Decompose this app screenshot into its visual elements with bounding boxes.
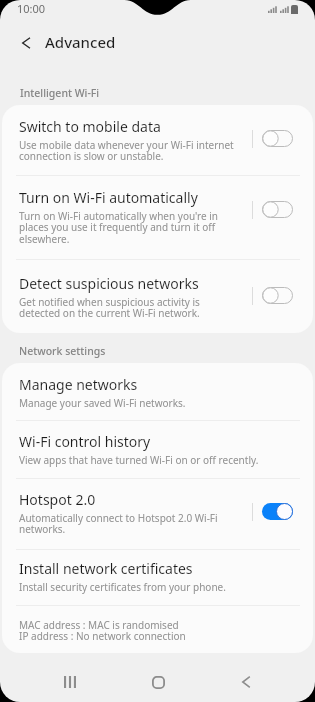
staticText: Detect suspicious networks bbox=[19, 274, 199, 293]
button[interactable]: Home bbox=[114, 662, 202, 702]
staticText: MAC address : MAC is randomised IP addre… bbox=[19, 618, 186, 643]
button[interactable]: Back bbox=[8, 25, 44, 61]
button[interactable]: Turn on Wi-Fi automatically toggle bbox=[262, 201, 293, 218]
button[interactable]: Detect suspicious networks toggle bbox=[262, 287, 293, 304]
staticText: Turn on Wi-Fi automatically when you're … bbox=[19, 209, 218, 246]
staticText: Install security certificates from your … bbox=[19, 580, 226, 594]
staticText: Install network certificates bbox=[19, 559, 193, 578]
staticText: Manage your saved Wi-Fi networks. bbox=[19, 396, 186, 410]
staticText: Network settings bbox=[19, 344, 106, 358]
button[interactable]: Switch to mobile data toggle bbox=[262, 130, 293, 147]
button[interactable]: Recent apps bbox=[26, 662, 114, 702]
staticText: Automatically connect to Hotspot 2.0 Wi-… bbox=[19, 511, 218, 536]
staticText: Get notified when suspicious activity is… bbox=[19, 295, 200, 320]
staticText: View apps that have turned Wi-Fi on or o… bbox=[19, 453, 259, 467]
button[interactable]: Hotspot 2.0 toggle bbox=[262, 503, 293, 520]
staticText: Hotspot 2.0 bbox=[19, 490, 96, 509]
staticText: Use mobile data whenever your Wi-Fi inte… bbox=[19, 138, 234, 163]
staticText: Switch to mobile data bbox=[19, 117, 161, 136]
staticText: Intelligent Wi-Fi bbox=[20, 86, 100, 100]
staticText: 10:00 bbox=[17, 1, 46, 16]
button[interactable]: Back bbox=[202, 662, 290, 702]
staticText: Manage networks bbox=[19, 375, 138, 394]
staticText: Advanced bbox=[45, 32, 116, 52]
staticText: Turn on Wi-Fi automatically bbox=[19, 188, 198, 207]
staticText: Wi-Fi control history bbox=[19, 432, 151, 451]
